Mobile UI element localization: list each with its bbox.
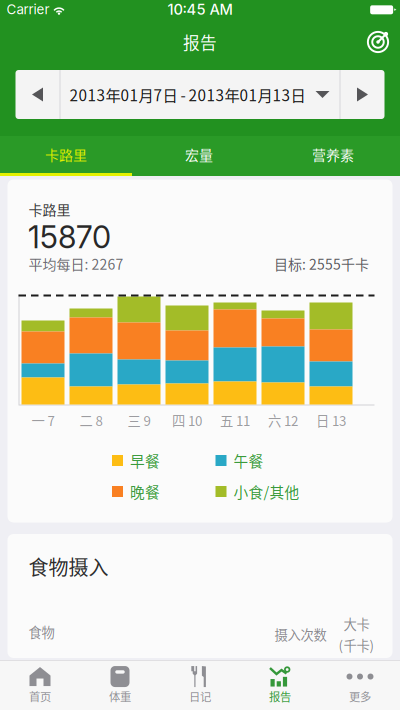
button[interactable]: 目标 (356, 20, 400, 64)
staticText: 五 11 (220, 410, 250, 430)
staticText: 报告 (183, 30, 217, 54)
staticText: 日 13 (316, 410, 346, 430)
staticText: 大卡 (343, 614, 369, 633)
staticText: 日记 (189, 688, 211, 704)
staticText: 目标: 2555千卡 (274, 253, 369, 274)
staticText: 晚餐 (130, 481, 160, 502)
button[interactable]: 营养素 (266, 136, 400, 176)
staticText: 平均每日: 2267 (28, 253, 123, 274)
staticText: 报告 (269, 688, 291, 704)
staticText: 二 8 (79, 410, 102, 430)
staticText: Carrier (6, 1, 49, 17)
button[interactable]: 首页 (0, 660, 80, 710)
button[interactable]: 体重 (80, 660, 160, 710)
staticText: 摄入次数 (274, 625, 326, 644)
staticText: 四 10 (172, 410, 202, 430)
staticText: 一 7 (31, 410, 54, 430)
button[interactable]: 宏量 (132, 136, 266, 176)
button[interactable]: 2013年01月7日 - 2013年01月13日 (60, 70, 339, 119)
staticText: (千卡) (338, 635, 374, 655)
button[interactable]: 日记 (160, 660, 240, 710)
button[interactable]: 更多 (320, 660, 400, 710)
staticText: 10:45 AM (167, 1, 232, 18)
button[interactable]: 卡路里 (0, 136, 132, 176)
staticText: 卡路里 (45, 144, 87, 165)
button[interactable]: 上一周 (15, 70, 59, 119)
staticText: 2013年01月7日 - 2013年01月13日 (69, 83, 305, 106)
staticText: 食物 (28, 622, 54, 641)
staticText: 食物摄入 (28, 552, 108, 581)
staticText: 首页 (29, 688, 51, 704)
staticText: 更多 (349, 688, 371, 704)
staticText: 午餐 (233, 450, 263, 471)
staticText: 三 9 (127, 410, 150, 430)
staticText: 体重 (109, 688, 131, 704)
button[interactable]: 下一周 (340, 70, 384, 119)
staticText: 营养素 (312, 144, 354, 165)
staticText: 宏量 (185, 144, 213, 165)
staticText: 六 12 (268, 410, 298, 430)
staticText: 卡路里 (28, 199, 70, 219)
staticText: 小食/其他 (233, 481, 299, 502)
staticText: 早餐 (130, 450, 160, 471)
staticText: 15870 (28, 218, 111, 256)
button[interactable]: 报告 (240, 660, 320, 710)
